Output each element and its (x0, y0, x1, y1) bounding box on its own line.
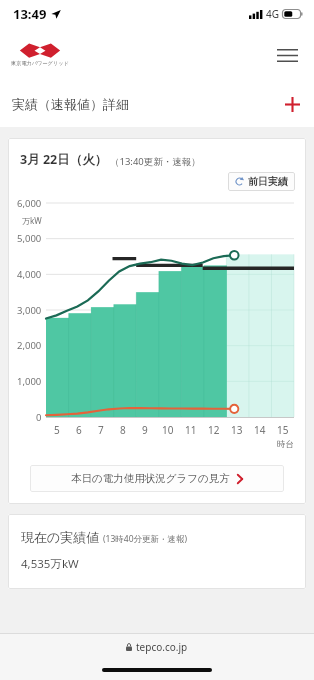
staticText: 1,000 (17, 375, 42, 388)
button[interactable]: 本日の電力使用状況グラフの見方 (30, 465, 284, 492)
staticText: 4G (266, 7, 279, 21)
staticText: 万kW (22, 215, 42, 226)
staticText: 本日の電力使用状況グラフの見方 (71, 472, 230, 485)
staticText: (13時40分更新・速報) (103, 533, 188, 545)
staticText: 3月 22日（火） (20, 151, 108, 168)
button[interactable]: メニュー (270, 38, 304, 72)
staticText: 5 (54, 423, 60, 437)
staticText: 11 (185, 423, 197, 437)
staticText: 4,000 (17, 268, 42, 281)
staticText: 13 (231, 423, 243, 437)
staticText: （13:40更新・速報） (110, 155, 201, 168)
staticText: 2,000 (17, 339, 42, 352)
staticText: 現在の実績値 (21, 529, 100, 545)
staticText: 実績（速報値）詳細 (12, 96, 129, 112)
staticText: 10 (162, 423, 174, 437)
staticText: 9 (142, 423, 148, 437)
staticText: 7 (98, 423, 104, 437)
staticText: 4,535万kW (21, 556, 79, 572)
staticText: 13:49 (13, 5, 47, 23)
button[interactable]: 現在の実績値 (8, 514, 306, 589)
staticText: 3,000 (17, 304, 42, 317)
staticText: 12 (208, 423, 220, 437)
staticText: 前日実績 (248, 175, 288, 188)
staticText: 6,000 (17, 197, 42, 210)
staticText: 8 (120, 423, 126, 437)
staticText: tepco.co.jp (136, 640, 188, 654)
button[interactable]: 東京電力パワーグリッド (9, 41, 71, 69)
staticText: 6 (76, 423, 82, 437)
staticText: 0 (36, 411, 42, 424)
staticText: 東京電力パワーグリッド (11, 60, 69, 67)
staticText: 5,000 (17, 232, 42, 245)
button[interactable]: 実績（速報値）詳細 (0, 81, 314, 127)
staticText: 時台 (277, 439, 294, 450)
staticText: 15 (277, 423, 289, 437)
staticText: 14 (254, 423, 266, 437)
button[interactable]: 前日実績 (228, 172, 295, 191)
